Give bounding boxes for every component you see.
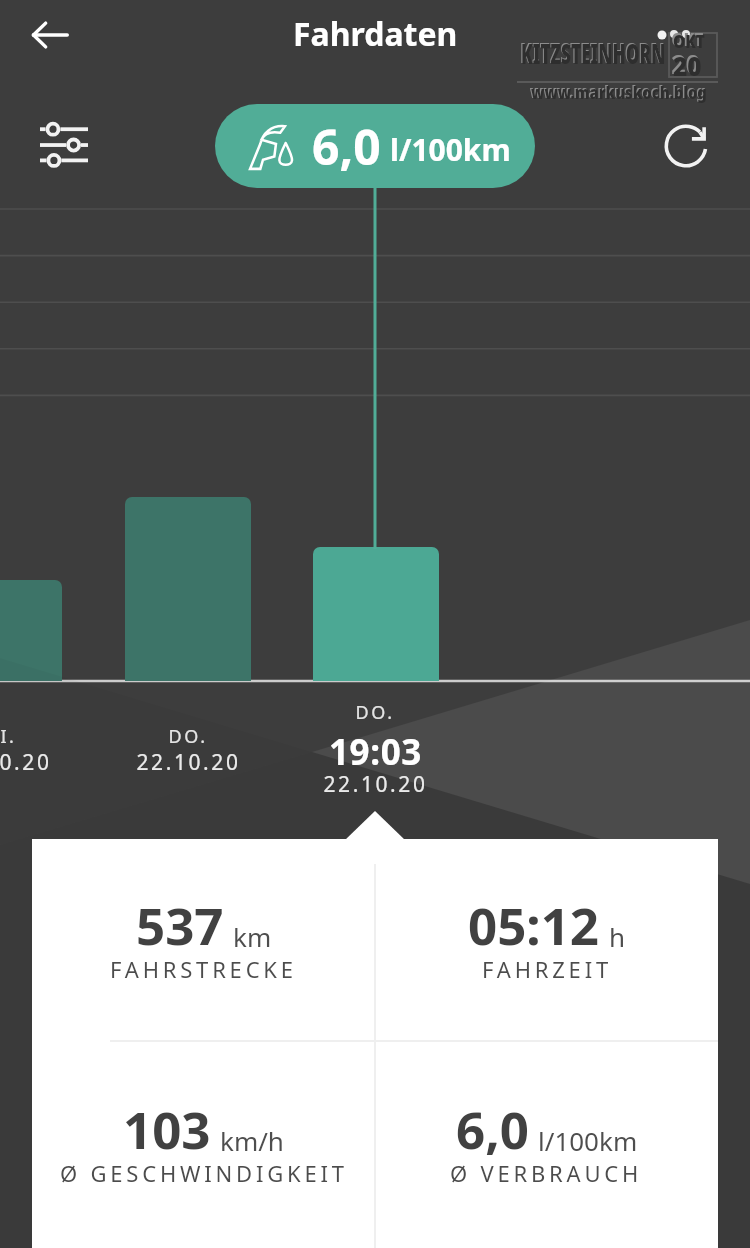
staticText: 22.10.20 <box>136 748 241 777</box>
staticText: 19:03 <box>329 728 422 776</box>
button[interactable]: 537 <box>32 839 375 1040</box>
staticText: Ø VERBRAUCH <box>450 1158 643 1188</box>
staticText: km/h <box>220 1123 284 1158</box>
button[interactable]: Filter settings <box>32 114 96 178</box>
button[interactable]: 6,0 <box>215 104 535 188</box>
staticText: 21.10.20 <box>0 748 52 777</box>
staticText: MI. <box>0 724 17 749</box>
staticText: 537 <box>136 890 224 959</box>
button[interactable]: 6,0 <box>375 1040 718 1248</box>
button[interactable]: 05:12 <box>375 839 718 1040</box>
staticText: km <box>233 919 272 954</box>
button[interactable]: Refresh <box>654 114 718 178</box>
button[interactable]: Back <box>24 9 76 61</box>
staticText: Fahrdaten <box>293 12 458 56</box>
staticText: 6,0 <box>456 1094 529 1163</box>
staticText: 103 <box>123 1094 211 1163</box>
staticText: 05:12 <box>468 890 600 959</box>
staticText: FAHRSTRECKE <box>110 954 297 984</box>
button[interactable]: 103 <box>32 1040 375 1248</box>
staticText: DO. <box>168 724 208 749</box>
staticText: l/100km <box>390 129 511 170</box>
staticText: l/100km <box>538 1123 638 1158</box>
staticText: FAHRZEIT <box>482 954 612 984</box>
staticText: 6,0 <box>312 114 381 179</box>
staticText: 22.10.20 <box>323 770 428 799</box>
button[interactable] <box>313 547 439 681</box>
staticText: h <box>609 919 626 954</box>
staticText: Ø GESCHWINDIGKEIT <box>60 1158 348 1188</box>
staticText: DO. <box>355 700 395 725</box>
